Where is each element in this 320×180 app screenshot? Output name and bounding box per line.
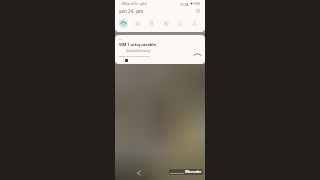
staticText: Tel — [119, 37, 123, 40]
staticText: XRecorder — [185, 170, 202, 174]
button[interactable]: Collapse notification — [193, 50, 202, 59]
button[interactable]: Tel — [115, 35, 205, 64]
staticText: 11:34 — [180, 2, 189, 6]
button[interactable]: Quick setting 5 — [190, 19, 199, 28]
staticText: Bəlkə də siz bunu bilirsiniz — [119, 54, 150, 57]
button[interactable]: Quick setting 3 — [162, 19, 171, 28]
button[interactable]: Quick setting 4 — [176, 19, 185, 28]
staticText: Qəbul edilən mesaj › — [126, 49, 151, 53]
staticText: Recorded by — [170, 171, 185, 174]
staticText: · · İNCə və Ev · şəkil — [119, 2, 147, 6]
button[interactable]: Quick setting 0 — [119, 19, 128, 28]
button[interactable]: Back — [135, 169, 143, 177]
button[interactable]: Settings — [195, 8, 201, 14]
staticText: 69% — [194, 2, 201, 6]
button[interactable]: Quick setting 1 — [133, 19, 142, 28]
button[interactable]: Quick setting 2 — [147, 19, 156, 28]
staticText: yan 24, şən — [119, 8, 144, 14]
staticText: SIM 1 artıq cavabla — [119, 42, 156, 47]
